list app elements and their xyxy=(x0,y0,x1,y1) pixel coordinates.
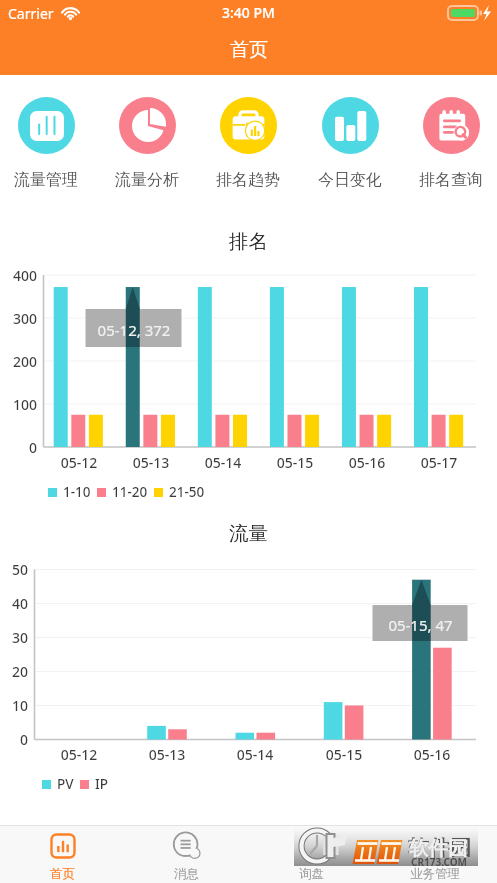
staticText: 05-13 xyxy=(116,453,186,472)
staticText: 05-16 xyxy=(332,453,402,472)
other: Messages xyxy=(173,832,201,860)
staticText: 05-17 xyxy=(404,453,474,472)
staticText: 05-12, 372 xyxy=(86,320,182,340)
staticText: 40 xyxy=(0,594,28,613)
other: Home xyxy=(50,833,76,859)
staticText: PV xyxy=(57,775,74,793)
staticText: 流量分析 xyxy=(115,170,179,190)
button[interactable]: 流量分析 xyxy=(97,97,197,174)
staticText: 05-14 xyxy=(188,453,258,472)
staticText: 软件园 xyxy=(408,835,471,861)
staticText: 20 xyxy=(0,662,28,681)
staticText: 首页 xyxy=(50,866,75,882)
staticText: 200 xyxy=(0,352,37,371)
staticText: 0 xyxy=(0,730,28,749)
button[interactable]: Messages xyxy=(124,825,248,883)
staticText: 05-15 xyxy=(260,453,330,472)
button[interactable]: 排名查询 xyxy=(401,97,497,174)
staticText: 05-12 xyxy=(44,453,114,472)
button[interactable]: Inquiries xyxy=(249,825,373,883)
staticText: 05-13 xyxy=(132,745,202,764)
staticText: 11-20 xyxy=(112,483,148,501)
staticText: 300 xyxy=(0,309,37,328)
staticText: 软件园 xyxy=(409,836,468,861)
staticText: 业务管理 xyxy=(410,866,460,882)
staticText: 0 xyxy=(0,438,37,457)
staticText: 排名查询 xyxy=(419,170,483,190)
other: Business xyxy=(423,833,449,859)
staticText: 消息 xyxy=(174,866,199,882)
staticText: 今日变化 xyxy=(318,170,382,190)
button[interactable]: 排名趋势 xyxy=(198,97,298,174)
staticText: 05-14 xyxy=(220,745,290,764)
staticText: 排名趋势 xyxy=(216,170,280,190)
staticText: 05-16 xyxy=(397,745,467,764)
other: Inquiries xyxy=(299,833,325,859)
staticText: 100 xyxy=(0,395,37,414)
staticText: 3:40 PM xyxy=(222,3,275,22)
staticText: 21-50 xyxy=(169,483,205,501)
staticText: 流量管理 xyxy=(14,170,78,190)
staticText: 05-12 xyxy=(44,745,114,764)
button[interactable]: Business xyxy=(373,825,497,883)
staticText: 询盘 xyxy=(299,866,324,882)
staticText: 排名 xyxy=(0,229,497,254)
staticText: 30 xyxy=(0,628,28,647)
staticText: 首页 xyxy=(230,38,268,62)
button[interactable]: 流量管理 xyxy=(0,97,96,174)
staticText: 05-15 xyxy=(309,745,379,764)
staticText: 1-10 xyxy=(63,483,91,501)
staticText: 400 xyxy=(0,266,37,285)
staticText: Carrier xyxy=(8,4,54,23)
staticText: 流量 xyxy=(0,521,497,546)
staticText: 05-15, 47 xyxy=(373,615,468,635)
staticText: CR173.COM xyxy=(411,855,468,869)
button[interactable]: Home xyxy=(0,825,124,883)
staticText: 10 xyxy=(0,696,28,715)
staticText: 50 xyxy=(0,560,28,579)
button[interactable]: 今日变化 xyxy=(300,97,400,174)
staticText: IP xyxy=(95,775,109,793)
